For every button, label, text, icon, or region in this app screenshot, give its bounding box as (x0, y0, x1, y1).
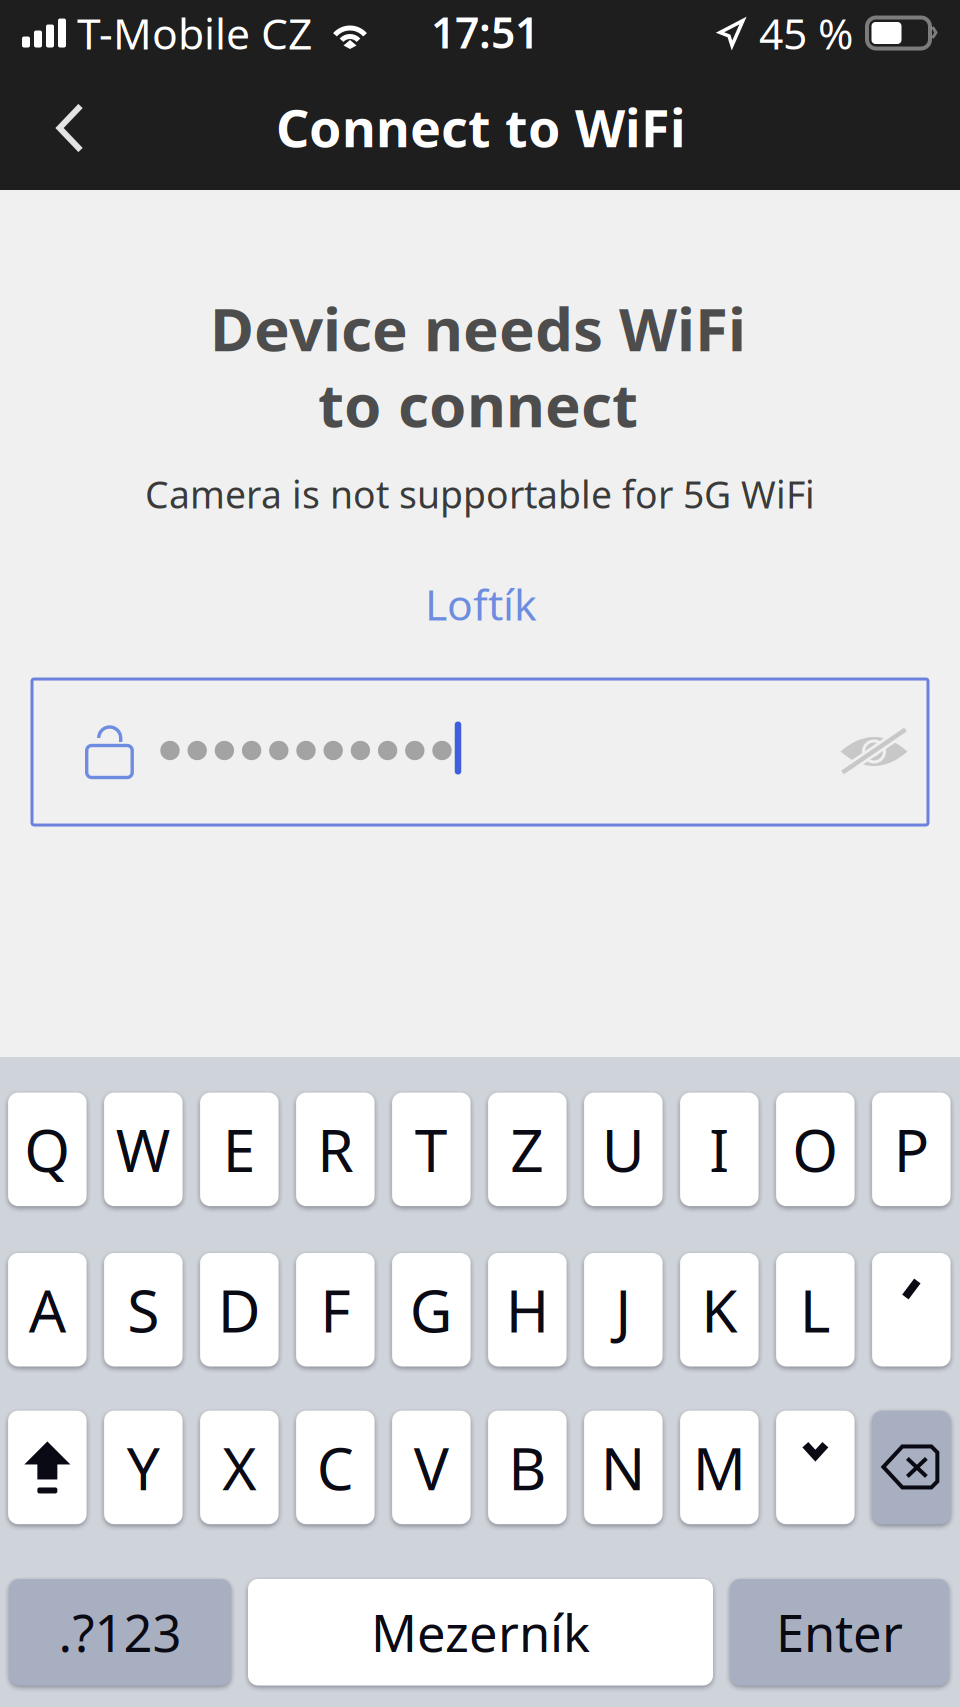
button[interactable]: Caron accent (776, 1411, 855, 1524)
button[interactable]: X (200, 1411, 279, 1524)
staticText: G (410, 1271, 453, 1349)
button[interactable]: Shift (8, 1411, 87, 1524)
staticText: to connect (318, 364, 638, 444)
button[interactable]: U (584, 1093, 663, 1206)
staticText: 45 % (759, 5, 853, 61)
button[interactable]: M (680, 1411, 759, 1524)
button[interactable]: Loftík (399, 566, 563, 642)
button[interactable]: F (296, 1253, 375, 1366)
button[interactable]: D (200, 1253, 279, 1366)
staticText: J (615, 1271, 631, 1349)
staticText: C (317, 1428, 354, 1506)
staticText: R (317, 1110, 353, 1188)
button[interactable]: H (488, 1253, 567, 1366)
button[interactable]: P (872, 1093, 951, 1206)
staticText: B (508, 1428, 546, 1506)
staticText: K (701, 1271, 737, 1349)
staticText: N (601, 1428, 646, 1506)
button[interactable]: I (680, 1093, 759, 1206)
button[interactable]: Enter (730, 1579, 949, 1685)
staticText: X (222, 1428, 256, 1506)
staticText: U (602, 1110, 645, 1188)
staticText: I (709, 1110, 729, 1188)
staticText: T-Mobile CZ (77, 5, 312, 61)
staticText: Z (510, 1110, 544, 1188)
button[interactable]: V (392, 1411, 471, 1524)
staticText: Enter (776, 1599, 903, 1666)
staticText: E (223, 1110, 256, 1188)
button[interactable]: Mezerník (248, 1579, 713, 1685)
button[interactable]: Y (104, 1411, 183, 1524)
staticText: D (218, 1271, 261, 1349)
staticText: Connect to WiFi (276, 92, 686, 162)
staticText: Q (24, 1110, 70, 1188)
button[interactable]: R (296, 1093, 375, 1206)
staticText: S (127, 1271, 159, 1349)
button[interactable]: N (584, 1411, 663, 1524)
button[interactable]: E (200, 1093, 279, 1206)
staticText: L (800, 1271, 831, 1349)
staticText: W (116, 1110, 171, 1188)
button[interactable]: A (8, 1253, 87, 1366)
staticText: Mezerník (371, 1599, 590, 1666)
staticText: Camera is not supportable for 5G WiFi (145, 469, 815, 519)
button[interactable]: Back (10, 73, 130, 183)
button[interactable]: G (392, 1253, 471, 1366)
button[interactable]: B (488, 1411, 567, 1524)
button[interactable]: Z (488, 1093, 567, 1206)
staticText: V (414, 1428, 449, 1506)
button[interactable]: Acute accent (872, 1253, 951, 1366)
button[interactable]: J (584, 1253, 663, 1366)
button[interactable]: S (104, 1253, 183, 1366)
button[interactable]: T (392, 1093, 471, 1206)
staticText: Device needs WiFi (210, 288, 746, 368)
button[interactable]: L (776, 1253, 855, 1366)
button[interactable]: .?123 (9, 1579, 231, 1685)
staticText: Loftík (425, 576, 537, 632)
staticText: F (320, 1271, 350, 1349)
staticText: 17:51 (431, 4, 539, 60)
staticText: A (29, 1271, 66, 1349)
staticText: T (415, 1110, 448, 1188)
staticText: M (693, 1428, 746, 1506)
button[interactable]: C (296, 1411, 375, 1524)
staticText: P (894, 1110, 929, 1188)
button[interactable]: O (776, 1093, 855, 1206)
staticText: O (792, 1110, 838, 1188)
button[interactable]: Backspace (872, 1411, 951, 1524)
staticText: .?123 (58, 1599, 181, 1666)
staticText: Y (127, 1428, 160, 1506)
button[interactable]: Q (8, 1093, 87, 1206)
button[interactable]: K (680, 1253, 759, 1366)
button[interactable]: W (104, 1093, 183, 1206)
staticText: H (506, 1271, 549, 1349)
button[interactable]: Show password (822, 701, 926, 801)
